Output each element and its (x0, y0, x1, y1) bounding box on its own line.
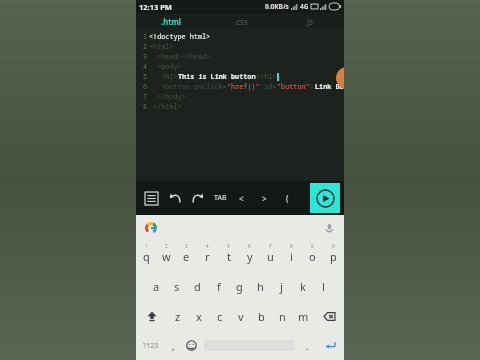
staticText: TAB (214, 193, 227, 203)
staticText: 2 (165, 243, 168, 249)
staticText: s (174, 279, 180, 294)
button[interactable]: g (229, 271, 250, 301)
button[interactable]: Run (310, 183, 340, 213)
staticText: id= (260, 82, 277, 91)
staticText: <h1> (149, 72, 178, 81)
button[interactable]: > (258, 187, 271, 209)
staticText: < (239, 193, 244, 204)
button[interactable]: 3 (176, 241, 197, 271)
button[interactable]: j (271, 271, 292, 301)
staticText: "button" (277, 82, 310, 91)
staticText: 5 (143, 72, 147, 81)
staticText: "href()" (227, 82, 260, 91)
staticText: 9 (311, 243, 314, 249)
staticText: . (306, 340, 309, 352)
button[interactable]: 8 (281, 241, 302, 271)
staticText: u (267, 249, 274, 264)
button[interactable]: ( (281, 187, 294, 209)
button[interactable]: .html (136, 13, 206, 29)
button[interactable]: Redo (188, 188, 208, 208)
staticText: 0 (332, 243, 335, 249)
staticText: l (322, 279, 325, 294)
button[interactable]: .css (206, 13, 275, 29)
button[interactable]: .js (275, 13, 344, 29)
staticText: <!doctype html> (149, 32, 211, 41)
staticText: 3 (143, 52, 147, 61)
button[interactable]: ?123 (136, 331, 165, 360)
button[interactable]: Emoji (182, 331, 201, 360)
button[interactable]: Shift (136, 301, 167, 331)
button[interactable]: 1 (136, 241, 156, 271)
staticText: </h1> (256, 72, 277, 81)
button[interactable]: l (313, 271, 334, 301)
staticText: 4G (300, 2, 309, 11)
staticText: Link Butto (315, 82, 344, 91)
staticText: 3 (185, 243, 188, 249)
button[interactable]: Voice input (321, 220, 337, 236)
staticText: n (279, 309, 286, 324)
button[interactable]: 0 (323, 241, 344, 271)
button[interactable]: Space (204, 334, 295, 357)
button[interactable]: < (235, 187, 248, 209)
button[interactable]: File list (140, 187, 162, 209)
button[interactable]: s (166, 271, 187, 301)
staticText: 4 (206, 243, 209, 249)
button[interactable]: TAB (214, 187, 227, 209)
staticText: w (162, 249, 171, 264)
staticText: <head></head> (149, 52, 211, 61)
staticText: q (143, 249, 150, 264)
staticText: 6 (143, 82, 147, 91)
button[interactable]: , (165, 331, 182, 360)
button[interactable]: v (230, 301, 251, 331)
staticText: e (183, 249, 190, 264)
button[interactable]: Backspace (314, 301, 344, 331)
staticText: 2 (143, 42, 147, 51)
button[interactable]: c (209, 301, 230, 331)
button[interactable]: 9 (302, 241, 323, 271)
staticText: 5 (227, 243, 230, 249)
button[interactable]: x (188, 301, 209, 331)
staticText: 1 (145, 243, 148, 249)
button[interactable]: f (208, 271, 229, 301)
staticText: o (309, 249, 316, 264)
staticText: a (153, 279, 160, 294)
button[interactable]: n (272, 301, 293, 331)
staticText: , (172, 340, 175, 352)
button[interactable]: Google (143, 220, 159, 236)
staticText: g (236, 279, 243, 294)
staticText: This is Link button (178, 72, 256, 81)
button[interactable]: z (167, 301, 188, 331)
staticText: </html> (149, 102, 182, 111)
staticText: .html (161, 16, 181, 27)
staticText: 8 (290, 243, 293, 249)
button[interactable]: a (146, 271, 166, 301)
staticText: z (175, 309, 181, 324)
staticText: m (298, 309, 309, 324)
staticText: j (280, 279, 283, 294)
staticText: 8 (143, 102, 147, 111)
button[interactable]: Undo (165, 188, 185, 208)
staticText: <html> (149, 42, 174, 51)
button[interactable]: 6 (239, 241, 260, 271)
button[interactable]: 5 (218, 241, 239, 271)
staticText: <button onclick= (149, 82, 227, 91)
staticText: i (290, 249, 293, 264)
staticText: > (262, 193, 267, 204)
staticText: <body> (149, 62, 182, 71)
button[interactable]: 7 (260, 241, 281, 271)
button[interactable]: Enter (317, 331, 344, 360)
staticText: f (217, 279, 221, 294)
button[interactable]: m (293, 301, 314, 331)
staticText: k (300, 279, 306, 294)
button[interactable]: 2 (156, 241, 176, 271)
button[interactable]: . (298, 331, 317, 360)
button[interactable]: h (250, 271, 271, 301)
staticText: 1 (143, 32, 147, 41)
staticText: 7 (143, 92, 147, 101)
button[interactable]: k (292, 271, 313, 301)
button[interactable]: b (251, 301, 272, 331)
staticText: p (330, 249, 337, 264)
staticText: 4 (143, 62, 147, 71)
button[interactable]: d (187, 271, 208, 301)
button[interactable]: 4 (197, 241, 218, 271)
